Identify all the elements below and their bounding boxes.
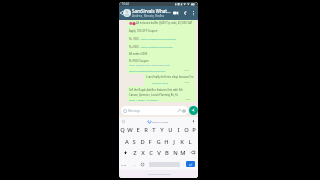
button[interactable]: L bbox=[186, 137, 194, 146]
staticText: Note: Coupon has 2 limits ends soon bbox=[129, 63, 171, 66]
button[interactable]: Voice call bbox=[182, 6, 189, 20]
button[interactable]: C bbox=[147, 148, 155, 157]
button[interactable]: Y bbox=[158, 125, 166, 134]
button[interactable]: W bbox=[126, 125, 134, 134]
staticText: N bbox=[173, 149, 178, 157]
button[interactable]: J bbox=[170, 137, 178, 146]
staticText: V bbox=[157, 149, 161, 157]
staticText: All orders 5000 bbox=[129, 52, 148, 56]
button[interactable]: S bbox=[130, 137, 138, 146]
button[interactable]: Shift bbox=[119, 148, 131, 157]
button[interactable]: T bbox=[150, 125, 158, 134]
button[interactable]: Z bbox=[131, 148, 139, 157]
button[interactable]: U bbox=[166, 125, 174, 134]
button[interactable]: Message bbox=[121, 106, 188, 115]
button[interactable]: V bbox=[155, 148, 163, 157]
button[interactable]: M bbox=[179, 148, 187, 157]
staticText: H bbox=[164, 138, 169, 146]
staticText: O bbox=[184, 126, 189, 134]
button[interactable]: E bbox=[134, 125, 142, 134]
staticText: , bbox=[134, 162, 135, 166]
staticText: . bbox=[183, 162, 184, 166]
staticText: Z bbox=[133, 149, 137, 157]
staticText: I bbox=[177, 126, 180, 134]
button[interactable]: I bbox=[174, 125, 182, 134]
staticText: Pune | Cuttin | 5 Mahaj.. bbox=[129, 98, 159, 101]
staticText: D bbox=[140, 138, 145, 146]
button[interactable]: SamSirvals What… bbox=[132, 8, 173, 18]
staticText: R bbox=[144, 126, 148, 134]
staticText: Message bbox=[128, 109, 141, 113]
staticText: M bbox=[180, 149, 186, 157]
button[interactable]: O bbox=[182, 125, 190, 134]
button[interactable]: D bbox=[138, 137, 146, 146]
staticText: P bbox=[192, 126, 196, 134]
staticText: Q bbox=[120, 126, 125, 134]
button[interactable]: G bbox=[154, 137, 162, 146]
button[interactable]: Enter bbox=[186, 161, 195, 167]
staticText: L bbox=[188, 138, 192, 146]
staticText: Sell the Royals Antilles features first … bbox=[129, 88, 183, 92]
staticText: U bbox=[168, 126, 173, 134]
staticText: Canvas, Spinners, Locals Planning Re, fi… bbox=[129, 93, 178, 97]
button[interactable]: X bbox=[139, 148, 147, 157]
staticText: SamSirvals What… bbox=[132, 8, 171, 14]
button[interactable]: B bbox=[163, 148, 171, 157]
staticText: https://vasvani.in/2h4ccbm bbox=[141, 45, 173, 48]
staticText: 12:08 bbox=[184, 81, 190, 84]
staticText: B bbox=[165, 149, 169, 157]
staticText: Andrea, Renata, Radha bbox=[132, 14, 165, 18]
staticText: A bbox=[125, 138, 129, 146]
button[interactable]: H bbox=[162, 137, 170, 146]
staticText: All inclusive buffet @429 Try code_20,50… bbox=[136, 21, 193, 25]
staticText: Search or type bbox=[152, 120, 169, 123]
button[interactable]: Send bbox=[189, 106, 198, 115]
staticText: https://vasvani.in/wa-a/90057b bbox=[129, 69, 166, 72]
button[interactable]: ?123 bbox=[120, 159, 128, 169]
staticText: E bbox=[136, 126, 140, 134]
staticText: Rs.1000 - bbox=[129, 37, 141, 41]
button[interactable]: Backspace bbox=[187, 148, 198, 157]
staticText: K bbox=[180, 138, 184, 146]
staticText: Rs.2000 - bbox=[129, 45, 141, 49]
staticText: F bbox=[148, 138, 152, 146]
button[interactable]: R bbox=[142, 125, 150, 134]
button[interactable]: , bbox=[131, 159, 137, 169]
staticText: J bbox=[173, 138, 175, 146]
button[interactable]: A bbox=[123, 137, 130, 146]
staticText: 12:07 bbox=[184, 69, 190, 72]
button[interactable]: More options bbox=[191, 6, 196, 20]
button[interactable]: F bbox=[146, 137, 154, 146]
staticText: Y bbox=[160, 126, 164, 134]
button[interactable]: K bbox=[178, 137, 186, 146]
button[interactable]: P bbox=[190, 125, 198, 134]
staticText: Rs 9500 Coupon bbox=[129, 59, 149, 63]
staticText: W bbox=[127, 126, 133, 134]
button[interactable]: N bbox=[171, 148, 179, 157]
staticText: Pura Re Hotel bbox=[152, 81, 169, 84]
staticText: ?123 bbox=[121, 163, 127, 166]
staticText: S bbox=[132, 138, 136, 146]
button[interactable]: Back bbox=[119, 6, 123, 20]
staticText: https://vasvani.in/10dsCsm/ht bbox=[141, 37, 177, 40]
button[interactable]: . bbox=[181, 159, 186, 169]
staticText: I can finally drift into sleep because I… bbox=[146, 75, 195, 79]
staticText: 12:09 bbox=[185, 98, 191, 101]
button[interactable]: Video call bbox=[172, 6, 179, 20]
staticText: Apply 10% OFF Coupon bbox=[129, 29, 158, 33]
button[interactable]: Q bbox=[119, 125, 126, 134]
button[interactable]: Group photo bbox=[123, 9, 131, 17]
staticText: T bbox=[152, 126, 156, 134]
staticText: X bbox=[141, 149, 145, 157]
staticText: G bbox=[156, 138, 161, 146]
staticText: C bbox=[149, 149, 153, 157]
button[interactable]: Emoji bbox=[139, 159, 145, 169]
staticText: 10:24 bbox=[122, 2, 129, 6]
